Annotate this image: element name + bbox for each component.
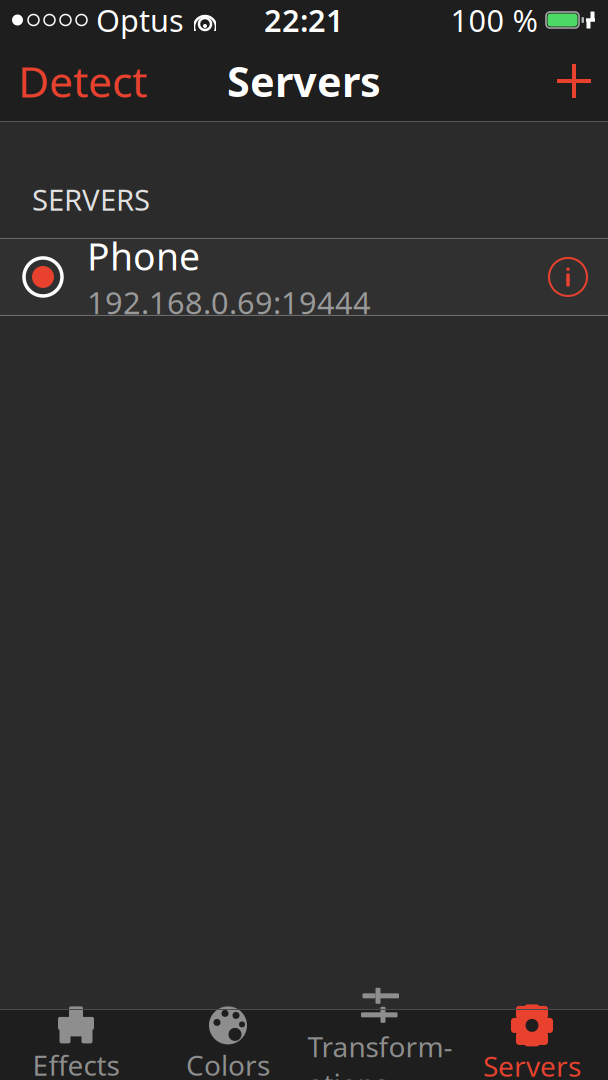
staticText: Servers [483,1047,581,1080]
staticText: 192.168.0.69:19444 [87,282,371,323]
button[interactable]: Effects [0,1009,152,1080]
button[interactable]: Servers [456,1009,608,1080]
button[interactable]: Detect [0,51,165,111]
button[interactable]: Transformations [304,1009,456,1080]
staticText: 100 % [450,0,537,40]
button[interactable]: Add server [540,51,608,111]
staticText: Detect [18,53,147,109]
staticText: Effects [32,1046,119,1080]
staticText: 22:21 [264,0,344,40]
button[interactable]: Colors [152,1009,304,1080]
staticText: Colors [186,1046,270,1080]
staticText: Servers [227,54,381,108]
staticText: SERVERS [32,180,150,219]
button[interactable]: Phone [0,239,608,315]
staticText: Phone [87,231,200,281]
staticText: Optus [96,0,184,40]
staticText: Transformations [307,1028,452,1080]
